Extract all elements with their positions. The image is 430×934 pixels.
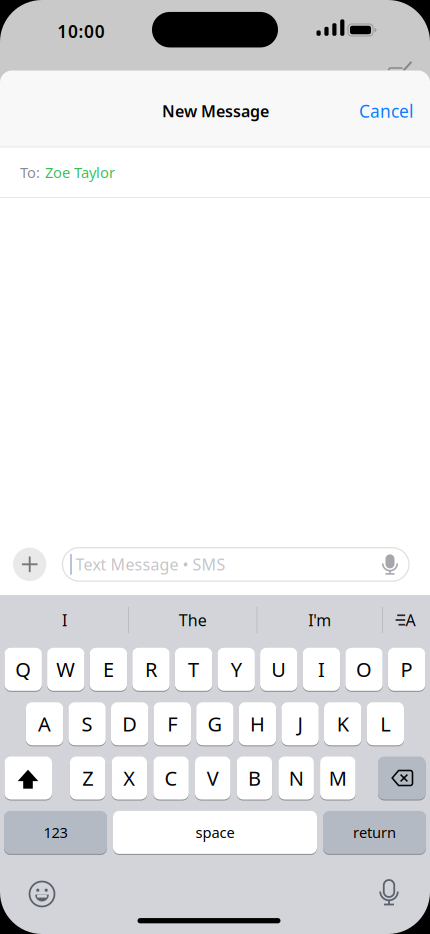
button[interactable]: T bbox=[175, 648, 212, 691]
button[interactable]: A bbox=[26, 702, 63, 745]
staticText: G bbox=[207, 710, 222, 737]
staticText: space bbox=[195, 823, 234, 842]
button[interactable]: Text Message • SMS bbox=[62, 548, 409, 581]
staticText: R bbox=[145, 656, 157, 683]
button[interactable]: P bbox=[388, 648, 425, 691]
button[interactable]: Emoji bbox=[28, 880, 56, 908]
staticText: T bbox=[188, 656, 199, 683]
button[interactable]: D bbox=[111, 702, 148, 745]
button[interactable]: K bbox=[324, 702, 361, 745]
button[interactable]: Cancel bbox=[359, 99, 413, 122]
staticText: I'm bbox=[308, 609, 331, 631]
staticText: I bbox=[62, 609, 67, 631]
button[interactable]: Dictation bbox=[375, 879, 403, 907]
staticText: D bbox=[122, 710, 137, 737]
button[interactable]: G bbox=[196, 702, 234, 745]
button[interactable]: Y bbox=[217, 648, 255, 691]
button[interactable]: Apps bbox=[13, 548, 46, 581]
staticText: Q bbox=[15, 656, 31, 683]
staticText: W bbox=[56, 656, 75, 683]
button[interactable]: 123 bbox=[4, 811, 107, 854]
staticText: 10:00 bbox=[57, 20, 105, 43]
staticText: M bbox=[329, 765, 347, 791]
button[interactable]: W bbox=[47, 648, 84, 691]
button[interactable]: X bbox=[112, 756, 147, 799]
staticText: The bbox=[179, 609, 207, 631]
button[interactable]: N bbox=[278, 756, 314, 799]
staticText: L bbox=[380, 710, 390, 737]
staticText: New Message bbox=[162, 100, 269, 122]
button[interactable]: I'm bbox=[259, 598, 381, 642]
staticText: return bbox=[353, 823, 396, 842]
button[interactable]: H bbox=[239, 702, 276, 745]
staticText: F bbox=[167, 710, 177, 737]
button[interactable]: return bbox=[323, 811, 426, 854]
button[interactable]: Q bbox=[4, 648, 42, 691]
staticText: S bbox=[82, 710, 93, 737]
button[interactable]: S bbox=[68, 702, 106, 745]
staticText: B bbox=[248, 765, 261, 791]
staticText: I bbox=[318, 656, 325, 683]
staticText: V bbox=[207, 765, 219, 791]
button[interactable]: L bbox=[367, 702, 404, 745]
button[interactable]: I bbox=[1, 598, 127, 642]
button[interactable]: space bbox=[113, 811, 317, 854]
button[interactable]: To: bbox=[0, 163, 430, 182]
button[interactable]: V bbox=[195, 756, 230, 799]
button[interactable]: M bbox=[320, 756, 356, 799]
staticText: Y bbox=[231, 656, 242, 683]
staticText: Zoe Taylor bbox=[45, 163, 115, 182]
button[interactable]: F bbox=[154, 702, 191, 745]
staticText: Z bbox=[82, 765, 93, 791]
button[interactable]: Delete bbox=[378, 756, 425, 799]
staticText: E bbox=[103, 656, 114, 683]
button[interactable]: Predictive text bbox=[382, 609, 422, 631]
button[interactable]: E bbox=[90, 648, 127, 691]
staticText: C bbox=[165, 765, 178, 791]
button[interactable]: J bbox=[281, 702, 319, 745]
staticText: X bbox=[123, 765, 135, 791]
button[interactable]: U bbox=[260, 648, 297, 691]
staticText: H bbox=[250, 710, 265, 737]
staticText: Cancel bbox=[359, 99, 413, 122]
staticText: To: bbox=[20, 163, 40, 182]
button[interactable]: Z bbox=[70, 756, 105, 799]
button[interactable]: O bbox=[345, 648, 383, 691]
staticText: K bbox=[337, 710, 349, 737]
button[interactable]: R bbox=[132, 648, 170, 691]
staticText: P bbox=[401, 656, 413, 683]
staticText: Text Message • SMS bbox=[75, 554, 225, 575]
staticText: J bbox=[298, 710, 303, 737]
staticText: U bbox=[271, 656, 286, 683]
button[interactable]: Shift bbox=[4, 756, 52, 799]
staticText: O bbox=[356, 656, 372, 683]
button[interactable]: B bbox=[237, 756, 272, 799]
staticText: A bbox=[38, 710, 51, 737]
staticText: A bbox=[405, 609, 415, 631]
button[interactable]: Dictate bbox=[375, 551, 405, 578]
button[interactable]: C bbox=[153, 756, 189, 799]
staticText: N bbox=[289, 765, 304, 791]
button[interactable]: I bbox=[303, 648, 340, 691]
staticText: 123 bbox=[43, 823, 67, 842]
button[interactable]: The bbox=[130, 598, 256, 642]
